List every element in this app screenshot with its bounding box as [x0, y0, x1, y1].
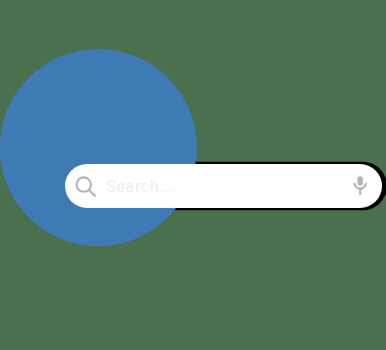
- other: Search: [72, 174, 96, 198]
- button[interactable]: Search: [65, 164, 382, 208]
- button[interactable]: Voice search: [348, 173, 373, 198]
- staticText: Search...: [106, 177, 174, 196]
